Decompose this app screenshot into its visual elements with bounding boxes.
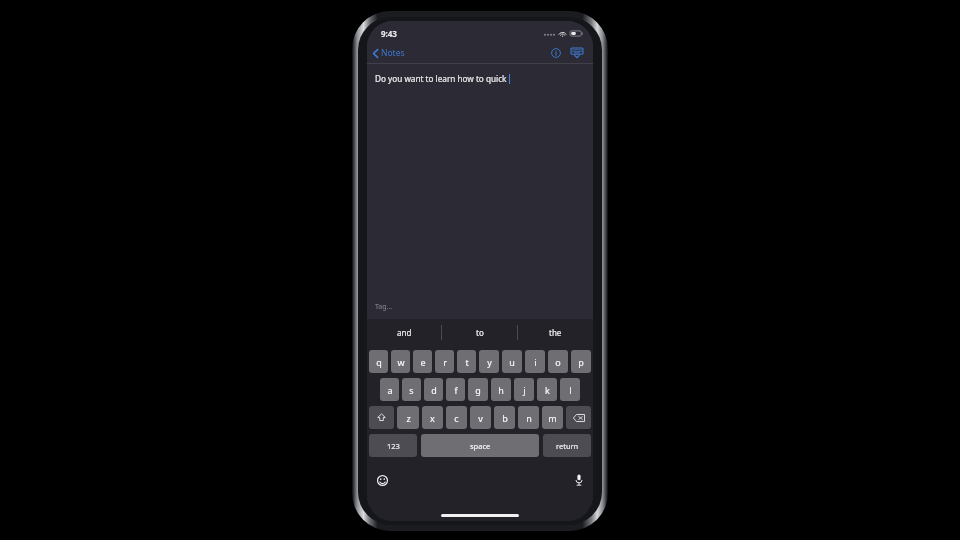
button[interactable]: w: [391, 350, 410, 373]
button[interactable]: c: [446, 406, 467, 429]
staticText: 123: [387, 441, 400, 451]
staticText: r: [443, 356, 447, 368]
staticText: the: [549, 327, 562, 338]
staticText: Do you want to learn how to quick: [375, 73, 507, 84]
button[interactable]: h: [491, 378, 511, 401]
staticText: o: [555, 356, 561, 368]
button[interactable]: the: [518, 319, 593, 346]
staticText: a: [387, 384, 393, 396]
staticText: j: [523, 384, 526, 396]
button[interactable]: i: [525, 350, 545, 373]
staticText: v: [478, 412, 483, 424]
staticText: h: [498, 384, 504, 396]
button[interactable]: Info: [548, 45, 564, 61]
staticText: and: [397, 327, 412, 338]
staticText: c: [454, 412, 459, 424]
button[interactable]: space: [421, 434, 539, 457]
button[interactable]: q: [369, 350, 388, 373]
button[interactable]: t: [457, 350, 476, 373]
button[interactable]: g: [468, 378, 488, 401]
staticText: p: [578, 356, 584, 368]
staticText: z: [406, 412, 411, 424]
button[interactable]: z: [397, 406, 419, 429]
staticText: f: [454, 384, 458, 396]
button[interactable]: Dictation: [569, 470, 593, 490]
button[interactable]: u: [502, 350, 522, 373]
button[interactable]: k: [537, 378, 557, 401]
button[interactable]: 123: [369, 434, 417, 457]
staticText: w: [397, 356, 405, 368]
button[interactable]: and: [367, 319, 441, 346]
button[interactable]: Shift: [369, 406, 394, 429]
button[interactable]: o: [548, 350, 568, 373]
button[interactable]: e: [413, 350, 432, 373]
button[interactable]: s: [402, 378, 421, 401]
button[interactable]: l: [560, 378, 580, 401]
staticText: l: [569, 384, 572, 396]
button[interactable]: r: [435, 350, 454, 373]
staticText: to: [476, 327, 484, 338]
button[interactable]: y: [479, 350, 499, 373]
staticText: 9:43: [381, 28, 397, 39]
staticText: return: [556, 441, 579, 451]
staticText: x: [430, 412, 435, 424]
staticText: Tag...: [375, 302, 393, 312]
button[interactable]: Emoji: [367, 471, 394, 490]
staticText: g: [475, 384, 481, 396]
staticText: n: [526, 412, 532, 424]
button[interactable]: return: [543, 434, 591, 457]
button[interactable]: to: [442, 319, 517, 346]
button[interactable]: Hide keyboard: [569, 46, 585, 60]
staticText: i: [534, 356, 537, 368]
button[interactable]: x: [422, 406, 443, 429]
staticText: t: [465, 356, 469, 368]
button[interactable]: f: [446, 378, 465, 401]
button[interactable]: n: [518, 406, 539, 429]
staticText: m: [548, 412, 557, 424]
button[interactable]: b: [494, 406, 515, 429]
button[interactable]: j: [514, 378, 534, 401]
staticText: k: [545, 384, 550, 396]
button[interactable]: m: [542, 406, 563, 429]
staticText: space: [470, 441, 491, 451]
staticText: y: [487, 356, 492, 368]
button[interactable]: p: [571, 350, 591, 373]
staticText: e: [420, 356, 426, 368]
button[interactable]: a: [380, 378, 399, 401]
button[interactable]: v: [470, 406, 491, 429]
button[interactable]: Notes: [367, 44, 413, 62]
staticText: s: [409, 384, 414, 396]
staticText: q: [376, 356, 382, 368]
staticText: u: [509, 356, 515, 368]
staticText: Notes: [381, 47, 405, 59]
button[interactable]: Backspace: [566, 406, 591, 429]
button[interactable]: d: [424, 378, 443, 401]
staticText: d: [431, 384, 437, 396]
staticText: b: [502, 412, 508, 424]
